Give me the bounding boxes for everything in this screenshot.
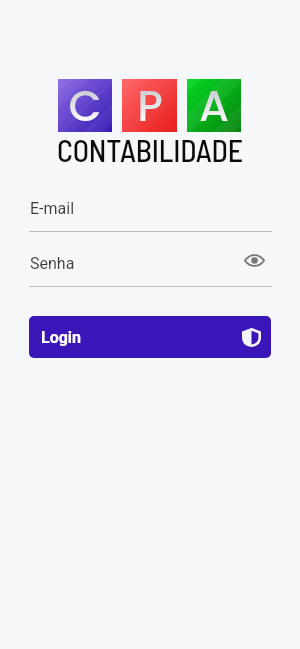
staticText: C (68, 76, 102, 129)
other: Show password (244, 254, 265, 267)
button[interactable]: Login (29, 316, 271, 358)
staticText: CONTABILIDADE (57, 132, 243, 168)
staticText: Senha (30, 254, 75, 273)
staticText: A (199, 76, 229, 129)
button[interactable]: Senha (29, 244, 272, 288)
staticText: E-mail (30, 199, 75, 218)
staticText: Login (41, 328, 82, 347)
button[interactable]: E-mail (29, 189, 272, 233)
other: Security (242, 328, 261, 347)
staticText: P (137, 76, 163, 129)
